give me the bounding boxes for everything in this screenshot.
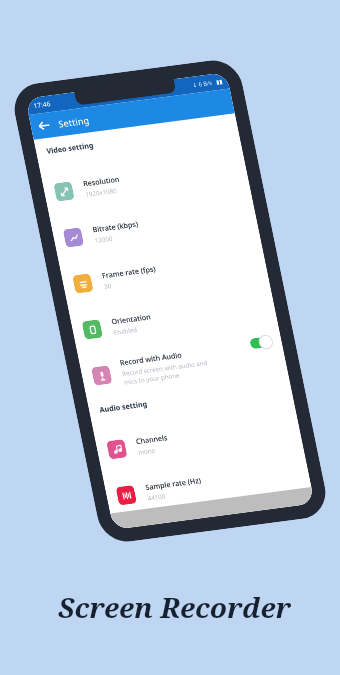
staticText: ↓ 6 B/s ▮▮	[192, 78, 223, 89]
button[interactable]: Channels	[93, 402, 303, 474]
button[interactable]: Bitrate (kbps)	[49, 190, 260, 262]
staticText: 17:46	[33, 99, 51, 111]
staticText: 12000	[94, 234, 114, 245]
staticText: Video setting	[46, 140, 95, 156]
button[interactable]: Frame rate (fps)	[59, 236, 269, 308]
button[interactable]: Back	[35, 117, 53, 134]
staticText: Channels	[135, 432, 169, 446]
staticText: Audio setting	[99, 399, 148, 414]
button[interactable]: Resolution	[40, 144, 250, 216]
staticText: Orientation	[110, 311, 152, 326]
staticText: Enabled	[113, 325, 138, 337]
button[interactable]: Toggle record with audio	[248, 334, 274, 351]
staticText: Frame rate (fps)	[101, 264, 157, 280]
button[interactable]: Sample rate (Hz)	[102, 448, 313, 520]
button[interactable]: Record with Audio	[78, 328, 288, 400]
staticText: 44100	[147, 492, 166, 503]
staticText: 1920x1080	[84, 186, 118, 199]
button[interactable]: Orientation	[68, 282, 279, 354]
staticText: Setting	[57, 114, 91, 130]
staticText: Screen Recorder	[58, 588, 291, 626]
staticText: mono	[137, 446, 156, 457]
staticText: Record with Audio	[119, 350, 183, 367]
staticText: Record screen with audio and mics to you…	[121, 358, 210, 387]
staticText: Resolution	[82, 174, 121, 188]
staticText: Bitrate (kbps)	[92, 219, 140, 234]
staticText: 30	[103, 281, 113, 291]
staticText: Sample rate (Hz)	[144, 475, 202, 492]
